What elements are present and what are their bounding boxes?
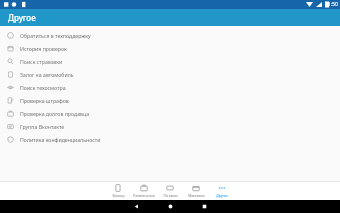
button[interactable]: Back bbox=[119, 200, 153, 213]
button[interactable]: Залог на автомобиль bbox=[0, 68, 340, 81]
button[interactable]: Filter bbox=[105, 182, 131, 200]
button[interactable]: Группа Вконтакте bbox=[0, 120, 340, 133]
button[interactable]: Политика конфиденциальности bbox=[0, 133, 340, 146]
button[interactable]: Проверка долгов продавца bbox=[0, 107, 340, 120]
staticText: Магазины bbox=[188, 193, 205, 198]
staticText: Поиск страховки bbox=[20, 58, 63, 65]
button[interactable]: История проверок bbox=[0, 42, 340, 55]
staticText: Политика конфиденциальности bbox=[20, 136, 101, 143]
staticText: Другое bbox=[216, 193, 228, 198]
staticText: Поиск техосмотра bbox=[20, 84, 66, 91]
button[interactable]: More bbox=[209, 182, 235, 200]
staticText: Развлечения bbox=[133, 193, 155, 198]
staticText: Фильтр bbox=[112, 193, 125, 198]
button[interactable]: Проверка штрафов bbox=[0, 94, 340, 107]
staticText: История проверок bbox=[20, 45, 67, 52]
button[interactable]: Orders bbox=[157, 182, 183, 200]
button[interactable]: Обратиться в техподдержку bbox=[0, 29, 340, 42]
staticText: Залог на автомобиль bbox=[20, 71, 74, 78]
staticText: Другое bbox=[8, 12, 36, 23]
staticText: Проверка штрафов bbox=[20, 97, 69, 104]
staticText: По заказ bbox=[163, 193, 178, 198]
button[interactable]: Home bbox=[153, 200, 187, 213]
staticText: Проверка долгов продавца bbox=[20, 110, 90, 117]
staticText: 11:50 bbox=[325, 1, 338, 8]
button[interactable]: Shops bbox=[183, 182, 209, 200]
button[interactable]: Recents bbox=[187, 200, 221, 213]
staticText: Обратиться в техподдержку bbox=[20, 32, 91, 39]
button[interactable]: Entertainment bbox=[131, 182, 157, 200]
button[interactable]: Поиск техосмотра bbox=[0, 81, 340, 94]
button[interactable]: Поиск страховки bbox=[0, 55, 340, 68]
staticText: Группа Вконтакте bbox=[20, 123, 65, 130]
